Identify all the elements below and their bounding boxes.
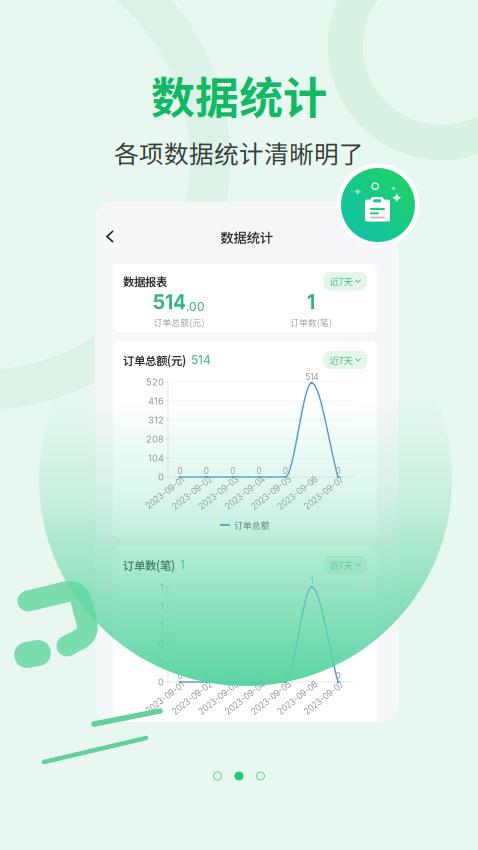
staticText: 近7天 [329,558,352,572]
staticText: 2023-09-05 [247,693,295,703]
staticText: 近7天 [329,274,352,288]
staticText: 2023-09-02 [168,488,216,498]
staticText: 1 [160,619,164,631]
staticText: .00 [186,299,205,314]
staticText: 2023-09-06 [274,488,322,498]
staticText: 订单总额(元) [153,316,204,328]
staticText: 近7天 [329,353,352,367]
staticText: 312 [148,414,164,426]
staticText: 514 [153,290,186,314]
staticText: 514 [191,353,211,367]
staticText: 0 [158,676,164,688]
staticText: 数据报表 [123,273,167,289]
staticText: 0 [256,466,261,476]
staticText: 2023-09-06 [274,693,322,703]
staticText: 订单数(笔) [123,557,175,573]
staticText: 数据统计 [220,227,272,247]
button[interactable]: 近7天 [323,272,367,290]
staticText: 2023-09-03 [195,693,243,703]
staticText: 0 [204,466,209,476]
staticText: 1 [307,290,315,314]
staticText: 2023-09-07 [300,488,348,498]
staticText: 0 [335,671,340,681]
staticText: 520 [146,376,164,388]
staticText: 订单总额 [234,519,270,531]
staticText: 1 [180,558,185,572]
staticText: 2023-09-04 [221,488,269,498]
staticText: 1 [160,600,164,612]
staticText: 208 [146,433,164,445]
staticText: 各项数据统计清晰明了 [114,135,364,170]
staticText: 1 [160,581,164,593]
staticText: 2023-09-05 [247,488,295,498]
button[interactable]: Back [95,220,126,254]
staticText: 0 [158,657,164,669]
button[interactable]: 近7天 [323,351,367,369]
staticText: 2023-09-07 [300,693,348,703]
staticText: 2023-09-02 [168,693,216,703]
staticText: 2023-09-03 [195,488,243,498]
staticText: 0 [230,466,235,476]
staticText: 订单数(笔) [290,316,332,328]
staticText: 0 [158,471,164,483]
staticText: 2023-09-04 [221,693,269,703]
staticText: 订单总额(元) [123,352,186,368]
staticText: 514 [305,372,318,382]
staticText: 数据统计 [151,63,327,127]
staticText: 0 [177,671,182,681]
staticText: 1 [310,576,313,586]
staticText: 104 [148,452,164,464]
staticText: 2023-09-01 [142,488,188,498]
staticText: 0 [177,466,182,476]
staticText: 0 [283,466,288,476]
button[interactable]: 近7天 [323,556,367,574]
staticText: 0 [158,638,164,650]
staticText: 0 [335,466,340,476]
staticText: 2023-09-01 [142,693,188,703]
staticText: 416 [148,395,164,407]
